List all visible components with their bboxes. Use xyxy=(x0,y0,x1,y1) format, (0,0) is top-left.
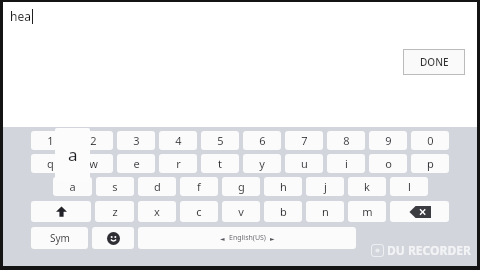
staticText: d xyxy=(154,179,161,194)
staticText: x xyxy=(154,204,160,219)
staticText: z xyxy=(112,204,118,219)
staticText: Sym xyxy=(50,231,70,245)
other: Emoji xyxy=(92,227,134,249)
staticText: u xyxy=(301,156,308,171)
staticText: 3 xyxy=(133,133,140,148)
staticText: g xyxy=(238,179,245,194)
staticText: DONE xyxy=(420,55,449,69)
button[interactable] xyxy=(360,227,449,249)
button[interactable]: a xyxy=(53,177,92,196)
button[interactable]: e xyxy=(117,154,155,173)
button[interactable]: s xyxy=(96,177,134,196)
staticText: English(US) xyxy=(229,233,266,243)
staticText: t xyxy=(218,156,222,171)
staticText: 7 xyxy=(301,133,308,148)
staticText: h xyxy=(280,179,287,194)
button[interactable]: 3 xyxy=(117,131,155,150)
staticText: o xyxy=(385,156,392,171)
staticText: f xyxy=(197,179,201,194)
button[interactable]: c xyxy=(180,201,218,222)
staticText: 8 xyxy=(343,133,350,148)
staticText: e xyxy=(133,156,140,171)
button[interactable]: Sym xyxy=(31,227,88,249)
staticText: i xyxy=(345,156,348,171)
staticText: n xyxy=(322,204,329,219)
other: Backspace xyxy=(390,201,449,222)
button[interactable]: l xyxy=(390,177,428,196)
button[interactable]: 4 xyxy=(159,131,197,150)
button[interactable]: g xyxy=(222,177,260,196)
button[interactable]: j xyxy=(306,177,344,196)
staticText: c xyxy=(196,204,202,219)
button[interactable]: v xyxy=(222,201,260,222)
staticText: 2 xyxy=(90,133,97,148)
button[interactable]: 8 xyxy=(327,131,365,150)
button[interactable]: 7 xyxy=(285,131,323,150)
staticText: hea xyxy=(10,8,31,24)
staticText: 6 xyxy=(259,133,266,148)
button[interactable]: d xyxy=(138,177,176,196)
button[interactable]: Shift xyxy=(31,201,91,222)
button[interactable]: 5 xyxy=(201,131,239,150)
button[interactable]: Backspace xyxy=(390,201,449,222)
button[interactable]: m xyxy=(348,201,386,222)
button[interactable]: z xyxy=(95,201,134,222)
button[interactable]: 2 xyxy=(74,131,113,150)
button[interactable]: 1 xyxy=(31,131,70,150)
button[interactable]: 0 xyxy=(411,131,449,150)
staticText: DU RECORDER xyxy=(387,242,471,258)
button[interactable]: 6 xyxy=(243,131,281,150)
staticText: p xyxy=(427,156,434,171)
staticText: ► xyxy=(270,235,275,242)
staticText: 9 xyxy=(385,133,392,148)
staticText: y xyxy=(259,156,265,171)
staticText: a xyxy=(68,143,78,166)
staticText: q xyxy=(47,156,54,171)
staticText: k xyxy=(364,179,370,194)
button[interactable]: f xyxy=(180,177,218,196)
button[interactable]: w xyxy=(74,154,113,173)
button[interactable]: DONE xyxy=(403,49,465,75)
button[interactable]: b xyxy=(264,201,302,222)
button[interactable]: q xyxy=(31,154,70,173)
staticText: v xyxy=(238,204,244,219)
button[interactable]: x xyxy=(138,201,176,222)
staticText: w xyxy=(89,156,98,171)
button[interactable]: h xyxy=(264,177,302,196)
button[interactable]: r xyxy=(159,154,197,173)
button[interactable]: i xyxy=(327,154,365,173)
button[interactable]: o xyxy=(369,154,407,173)
staticText: a xyxy=(69,179,76,194)
staticText: 5 xyxy=(217,133,224,148)
staticText: 0 xyxy=(427,133,434,148)
staticText: j xyxy=(324,179,327,194)
button[interactable]: ◄ xyxy=(138,227,356,249)
staticText: l xyxy=(408,179,411,194)
button[interactable]: p xyxy=(411,154,449,173)
staticText: b xyxy=(280,204,287,219)
button[interactable]: k xyxy=(348,177,386,196)
staticText: ◄ xyxy=(220,235,225,242)
staticText: 1 xyxy=(47,133,54,148)
button[interactable]: 9 xyxy=(369,131,407,150)
staticText: m xyxy=(362,204,373,219)
staticText: 4 xyxy=(175,133,182,148)
button[interactable]: n xyxy=(306,201,344,222)
button[interactable]: Emoji xyxy=(92,227,134,249)
staticText: r xyxy=(176,156,181,171)
button[interactable]: u xyxy=(285,154,323,173)
button[interactable]: t xyxy=(201,154,239,173)
other: Shift xyxy=(31,201,91,222)
button[interactable]: y xyxy=(243,154,281,173)
staticText: s xyxy=(112,179,118,194)
